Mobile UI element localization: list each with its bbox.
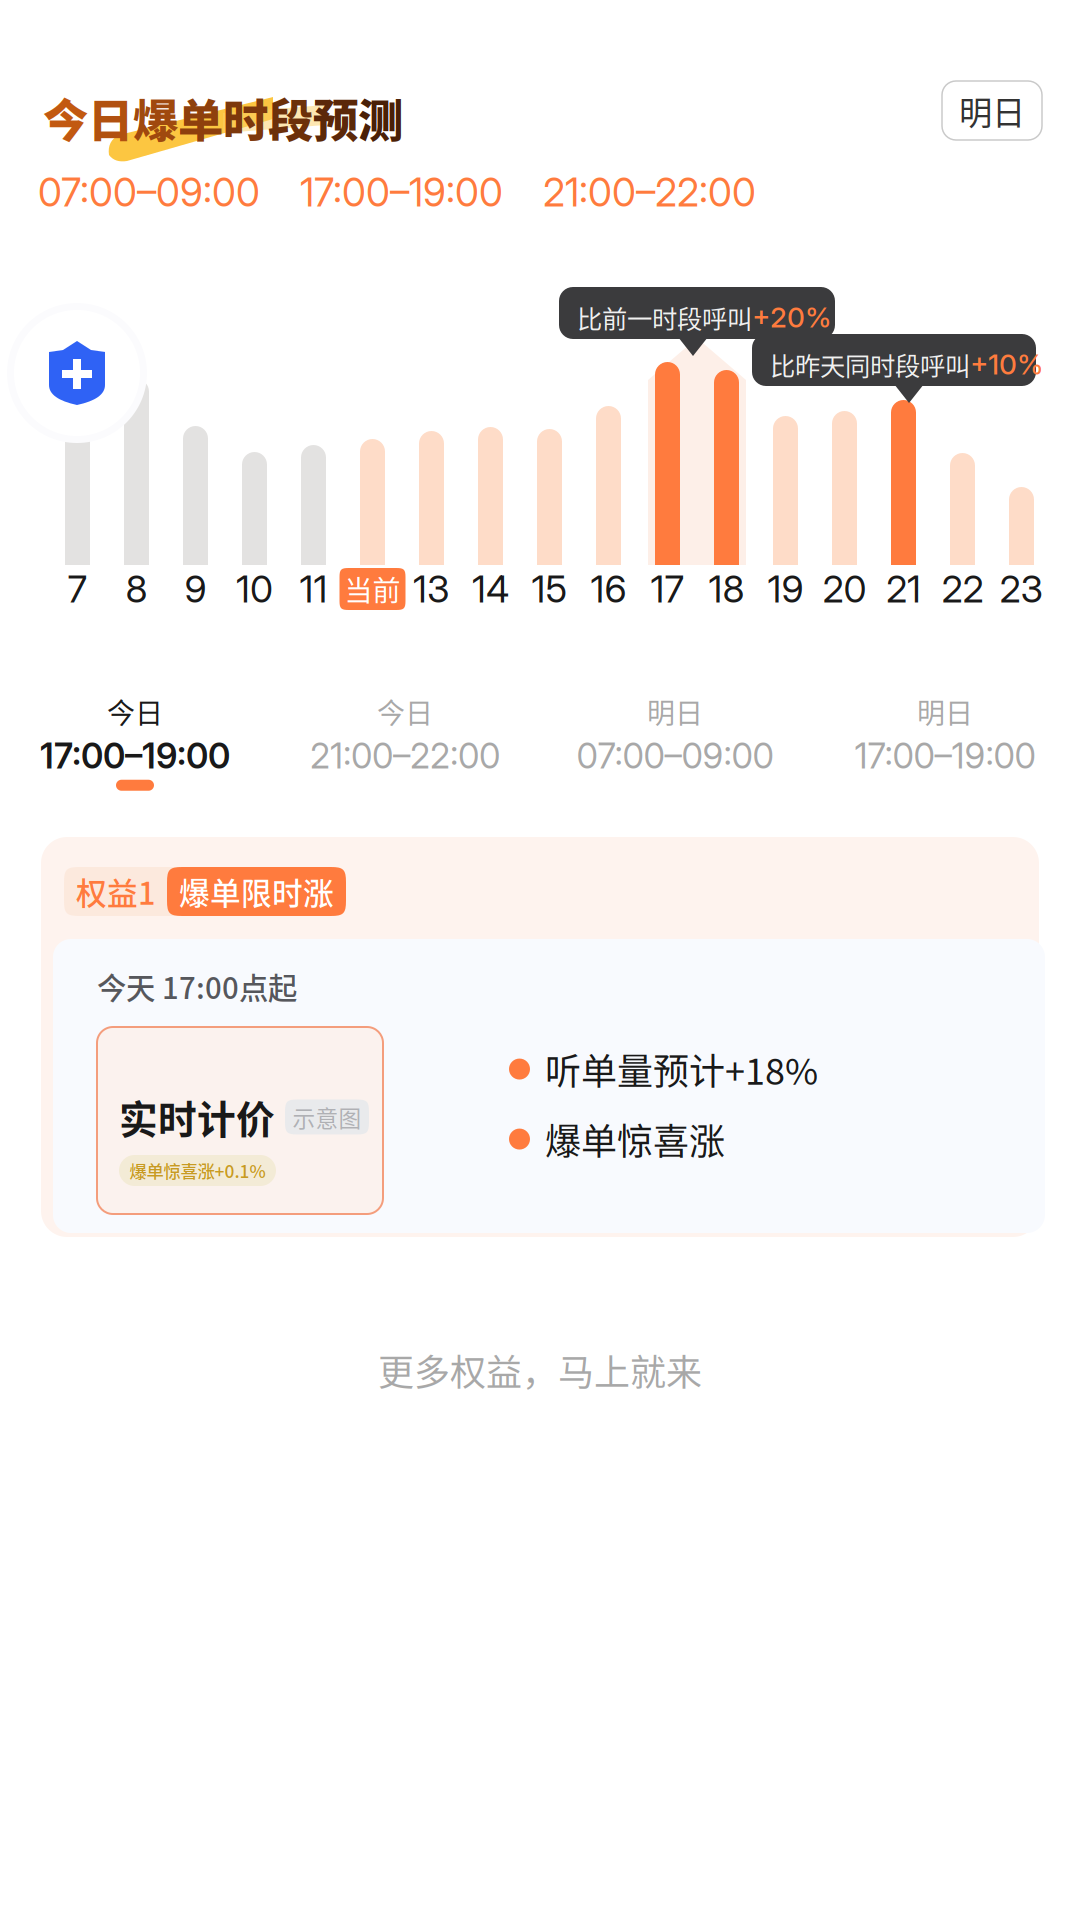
staticText: 测 bbox=[358, 85, 403, 151]
staticText: 11 bbox=[299, 566, 327, 612]
staticText: 预 bbox=[313, 85, 358, 151]
staticText: 17:00–19:00 bbox=[854, 735, 1035, 777]
staticText: 23 bbox=[999, 566, 1043, 612]
staticText: 17:00–19:00 bbox=[300, 169, 503, 216]
staticText: 明日 bbox=[959, 86, 1025, 135]
staticText: 比昨天同时段呼叫 bbox=[770, 346, 970, 383]
staticText: 爆单限时涨 bbox=[179, 869, 334, 914]
staticText: 8 bbox=[125, 566, 147, 612]
staticText: 今日 bbox=[377, 691, 433, 732]
staticText: 日 bbox=[88, 85, 133, 151]
staticText: 今日 bbox=[107, 691, 163, 732]
button[interactable]: 明日 bbox=[942, 81, 1042, 140]
staticText: 段 bbox=[268, 85, 313, 151]
staticText: 20 bbox=[822, 566, 866, 612]
staticText: 实时计价 bbox=[119, 1089, 275, 1145]
staticText: 07:00–09:00 bbox=[576, 735, 773, 777]
staticText: 17 bbox=[650, 566, 684, 612]
staticText: 今天 17:00点起 bbox=[97, 965, 297, 1007]
staticText: +20% bbox=[752, 300, 832, 334]
staticText: 比前一时段呼叫 bbox=[577, 299, 752, 336]
staticText: 22 bbox=[941, 566, 983, 612]
staticText: 爆 bbox=[133, 85, 178, 151]
staticText: 当前 bbox=[344, 569, 400, 609]
staticText: 今 bbox=[43, 85, 88, 151]
staticText: 7 bbox=[67, 566, 87, 612]
staticText: 19 bbox=[767, 566, 803, 612]
button[interactable]: 明日 bbox=[540, 686, 810, 796]
staticText: 更多权益，马上就来 bbox=[378, 1344, 702, 1396]
staticText: 9 bbox=[184, 566, 206, 612]
staticText: 爆单惊喜涨 bbox=[545, 1113, 725, 1165]
staticText: 16 bbox=[590, 566, 626, 612]
staticText: 21:00–22:00 bbox=[310, 735, 500, 777]
button[interactable]: 今日 bbox=[0, 686, 270, 796]
staticText: 明日 bbox=[917, 691, 973, 732]
button[interactable]: 今日 bbox=[270, 686, 540, 796]
staticText: 单 bbox=[178, 85, 223, 151]
staticText: 爆单惊喜涨+0.1% bbox=[129, 1158, 265, 1183]
staticText: 17:00–19:00 bbox=[40, 735, 230, 777]
staticText: 15 bbox=[531, 566, 567, 612]
staticText: 时 bbox=[223, 85, 268, 151]
staticText: 13 bbox=[413, 566, 450, 612]
button[interactable]: 明日 bbox=[810, 686, 1080, 796]
staticText: 21:00–22:00 bbox=[543, 169, 756, 216]
staticText: 07:00–09:00 bbox=[38, 169, 260, 216]
staticText: 明日 bbox=[647, 691, 703, 732]
staticText: 权益1 bbox=[76, 869, 155, 914]
staticText: 听单量预计+18% bbox=[545, 1043, 818, 1095]
staticText: 10 bbox=[236, 566, 273, 612]
staticText: +10% bbox=[970, 347, 1044, 381]
staticText: 18 bbox=[708, 566, 744, 612]
staticText: 14 bbox=[472, 566, 509, 612]
staticText: 21 bbox=[886, 566, 921, 612]
staticText: 示意图 bbox=[292, 1101, 361, 1133]
